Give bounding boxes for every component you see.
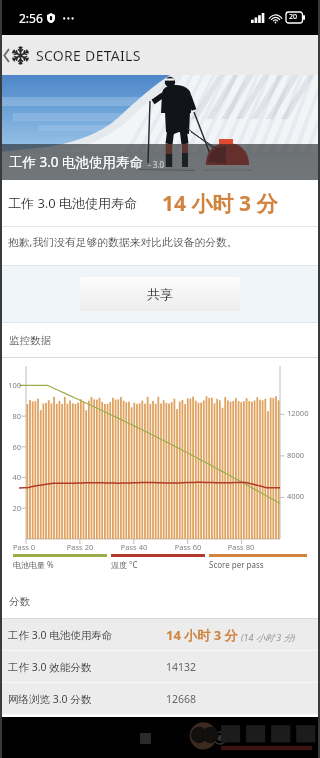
staticText: Pass 20 [62,542,98,552]
staticText: Pass 40 [116,542,152,552]
staticText: 60 [0,442,21,452]
staticText: 工作 3.0 电池使用寿命 [8,628,113,642]
staticText: 4000 [287,491,317,501]
staticText: (14 小时 3 分) [241,631,296,643]
staticText: 工作 3.0 电池使用寿命 [9,153,144,171]
staticText: 2:56 [19,10,43,26]
staticText: 温度 °C [111,559,138,570]
staticText: 工作 3.0 电池使用寿命 [8,194,138,212]
button[interactable]: 工作 3.0 电池使用寿命 [0,619,320,650]
staticText: 14 小时 3 分 [166,626,238,644]
staticText: 14 小时 3 分 [162,189,278,218]
staticText: Pass 80 [223,542,259,552]
staticText: 共享 [147,286,173,302]
staticText: Pass 60 [170,542,206,552]
staticText: 20 [289,12,298,22]
staticText: Score per pass [209,559,264,570]
button[interactable]: 网络浏览 3.0 分数 [0,683,320,714]
button[interactable]: 工作 3.0 效能分数 [0,651,320,682]
button[interactable]: 共享 [80,277,240,311]
button[interactable]: Home [205,723,235,753]
staticText: 网络浏览 3.0 分数 [8,692,92,706]
button[interactable]: Back [0,35,320,75]
staticText: 工作 3.0 效能分数 [8,660,92,674]
staticText: Pass 0 [6,542,42,552]
staticText: 抱歉,我们没有足够的数据来对比此设备的分数。 [8,234,238,249]
staticText: 14132 [166,660,197,674]
staticText: 80 [0,411,21,421]
staticText: 40 [0,472,21,482]
staticText: 12000 [287,408,317,418]
staticText: - 3.0 [144,159,165,170]
staticText: 电池电量 % [13,559,54,570]
staticText: 8000 [287,450,317,460]
staticText: 监控数据 [9,334,51,347]
staticText: SCORE DETAILS [36,46,141,65]
staticText: 20 [0,503,21,513]
staticText: 分数 [9,595,30,608]
staticText: 12668 [166,692,197,706]
button[interactable]: Recents [130,723,160,753]
staticText: 100 [0,380,21,390]
